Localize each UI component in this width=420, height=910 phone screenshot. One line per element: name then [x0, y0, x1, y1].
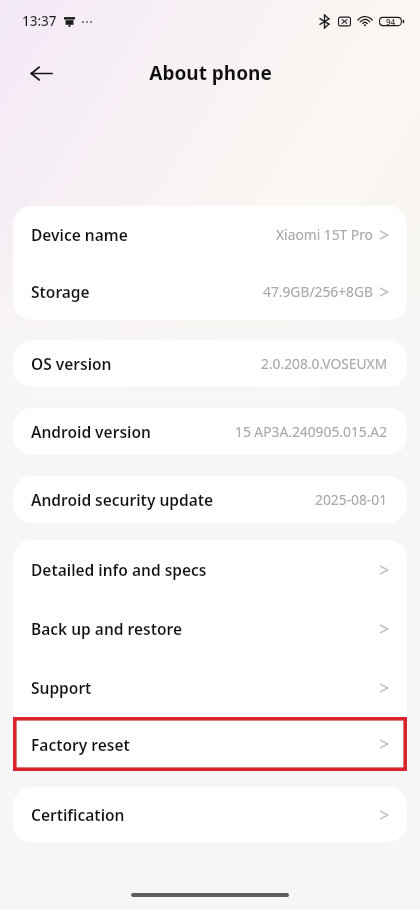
staticText: OS version — [31, 353, 112, 374]
button[interactable]: OS version — [13, 340, 407, 387]
staticText: Back up and restore — [31, 618, 182, 639]
button[interactable]: Support — [13, 658, 407, 717]
button[interactable]: Back — [19, 51, 63, 95]
button[interactable]: Factory reset — [13, 717, 407, 771]
button[interactable]: Detailed info and specs — [13, 540, 407, 599]
staticText: Storage — [31, 281, 90, 302]
staticText: About phone — [149, 60, 272, 86]
staticText: Device name — [31, 224, 128, 245]
staticText: Detailed info and specs — [31, 559, 207, 580]
staticText: 2025-08-01 — [315, 490, 388, 509]
button[interactable]: Android version — [13, 408, 407, 455]
staticText: Support — [31, 677, 92, 698]
staticText: 15 AP3A.240905.015.A2 — [235, 422, 388, 441]
button[interactable]: Certification — [13, 787, 407, 842]
button[interactable]: Back up and restore — [13, 599, 407, 658]
staticText: Android security update — [31, 489, 214, 510]
button[interactable]: Storage — [13, 263, 407, 320]
button[interactable]: Android security update — [13, 476, 407, 523]
staticText: 13:37 — [22, 12, 57, 30]
staticText: Android version — [31, 421, 151, 442]
staticText: Certification — [31, 804, 125, 825]
staticText: Xiaomi 15T Pro — [276, 225, 373, 244]
staticText: 2.0.208.0.VOSEUXM — [261, 354, 388, 373]
staticText: 94 — [386, 16, 396, 27]
button[interactable]: Device name — [13, 206, 407, 263]
staticText: Factory reset — [31, 734, 130, 755]
staticText: 47.9GB/256+8GB — [263, 282, 373, 301]
